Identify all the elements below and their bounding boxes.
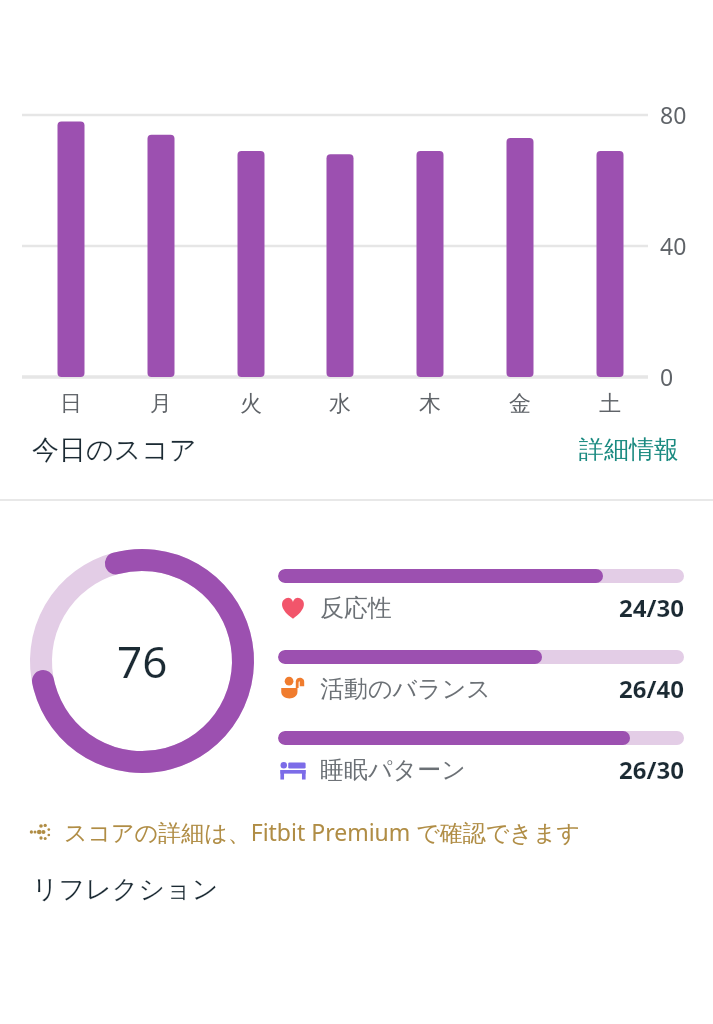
staticText: 26/30 [619,753,684,786]
button[interactable]: Daily readiness score 76 [28,547,256,775]
staticText: 26/40 [619,672,684,705]
button[interactable]: 詳細情報 [575,430,683,469]
staticText: 76 [117,631,168,691]
staticText: スコアの詳細は、Fitbit Premium で確認できます [64,816,580,847]
staticText: 日 [51,390,91,418]
button[interactable]: 活動のバランス [278,650,684,705]
button[interactable]: 睡眠パターン [278,731,684,786]
button[interactable]: スコアの詳細は、Fitbit Premium で確認できます [0,816,713,847]
staticText: 24/30 [619,591,684,624]
button[interactable]: 反応性 [278,569,684,624]
staticText: 活動のバランス [320,674,491,704]
staticText: 80 [660,99,687,130]
staticText: 月 [141,390,181,418]
staticText: 今日のスコア [32,433,197,467]
staticText: 40 [660,230,687,261]
staticText: 金 [500,390,540,418]
staticText: 詳細情報 [579,434,679,465]
staticText: 0 [660,361,674,392]
staticText: 睡眠パターン [320,755,466,785]
staticText: 木 [410,390,450,418]
staticText: 火 [231,390,271,418]
staticText: 反応性 [320,593,392,623]
staticText: 土 [590,390,630,418]
staticText: リフレクション [32,873,219,906]
staticText: 水 [320,390,360,418]
